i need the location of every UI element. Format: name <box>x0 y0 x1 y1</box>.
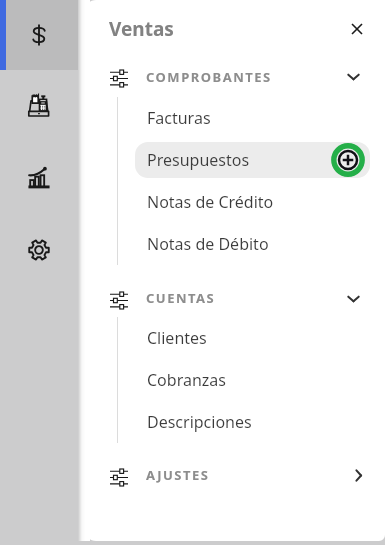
staticText: COMPROBANTES <box>146 68 272 86</box>
staticText: AJUSTES <box>146 466 210 484</box>
button[interactable]: Cobranzas <box>135 362 370 398</box>
button[interactable]: Ventas <box>0 0 78 70</box>
button[interactable]: Caja <box>0 70 78 140</box>
button[interactable]: Cerrar <box>340 12 374 46</box>
button[interactable]: Facturas <box>135 100 370 136</box>
button[interactable]: Notas de Crédito <box>135 184 370 220</box>
staticText: Clientes <box>147 327 207 349</box>
staticText: CUENTAS <box>146 289 216 307</box>
button[interactable]: Presupuestos <box>135 142 370 178</box>
staticText: Notas de Crédito <box>147 191 274 213</box>
staticText: Notas de Débito <box>147 233 269 255</box>
button[interactable]: COMPROBANTES <box>85 57 385 96</box>
button[interactable]: Descripciones <box>135 404 370 440</box>
button[interactable]: Clientes <box>135 320 370 356</box>
button[interactable]: AJUSTES <box>85 455 385 495</box>
button[interactable]: Reportes <box>0 143 78 213</box>
staticText: Ventas <box>109 16 174 42</box>
button[interactable]: CUENTAS <box>85 278 385 318</box>
button[interactable]: Agregar <box>331 143 365 177</box>
staticText: Cobranzas <box>147 369 226 391</box>
button[interactable]: Notas de Débito <box>135 226 370 262</box>
staticText: Facturas <box>147 107 211 129</box>
button[interactable]: Ajustes <box>0 215 78 285</box>
staticText: Descripciones <box>147 411 252 433</box>
staticText: Presupuestos <box>147 149 250 171</box>
